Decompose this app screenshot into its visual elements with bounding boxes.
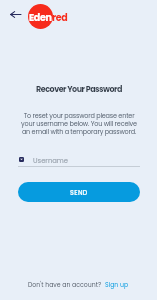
staticText: Eden [29,11,52,24]
button[interactable]: SEND [18,182,140,202]
button[interactable]: Sign up [105,280,129,289]
staticText: Recover Your Password [36,84,122,95]
button[interactable]: Back [6,5,24,23]
staticText: Don't have an account? [28,280,102,289]
staticText: To reset your password please enter your… [18,111,140,136]
staticText: red [52,11,68,24]
staticText: Sign up [105,280,129,289]
button[interactable]: Username [18,152,140,167]
staticText: Username [33,156,69,166]
staticText: SEND [70,188,88,197]
